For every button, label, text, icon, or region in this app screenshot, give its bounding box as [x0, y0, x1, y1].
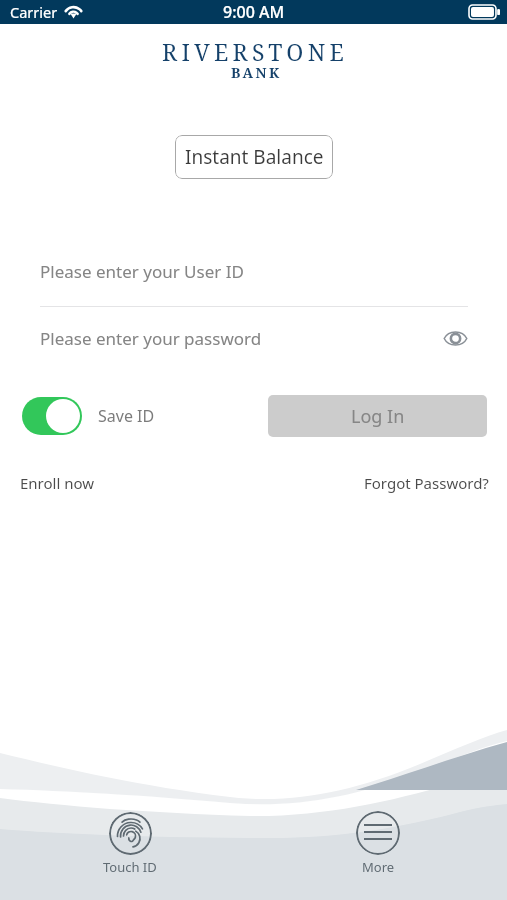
button[interactable]: Touch ID: [103, 812, 157, 876]
button[interactable]: Instant Balance: [175, 135, 333, 179]
button[interactable]: Show password: [440, 323, 470, 353]
staticText: Enroll now: [20, 473, 95, 493]
staticText: Carrier: [10, 2, 58, 22]
button[interactable]: Log In: [268, 395, 487, 437]
staticText: More: [362, 858, 395, 876]
staticText: Please enter your password: [40, 327, 262, 350]
staticText: Touch ID: [103, 858, 157, 876]
button[interactable]: Please enter your User ID: [0, 243, 507, 299]
staticText: BANK: [231, 63, 282, 82]
button[interactable]: Forgot Password?: [364, 473, 489, 493]
staticText: 9:00 AM: [223, 1, 285, 23]
staticText: Please enter your User ID: [40, 260, 244, 283]
staticText: Save ID: [98, 405, 155, 427]
staticText: Forgot Password?: [364, 473, 489, 493]
staticText: Log In: [351, 404, 405, 429]
staticText: RIVERSTONE: [162, 36, 349, 67]
staticText: Instant Balance: [185, 144, 324, 170]
button[interactable]: Save ID toggle: [22, 397, 82, 435]
button[interactable]: Please enter your password: [0, 312, 507, 364]
button[interactable]: Enroll now: [20, 473, 95, 493]
button[interactable]: More: [356, 811, 400, 876]
